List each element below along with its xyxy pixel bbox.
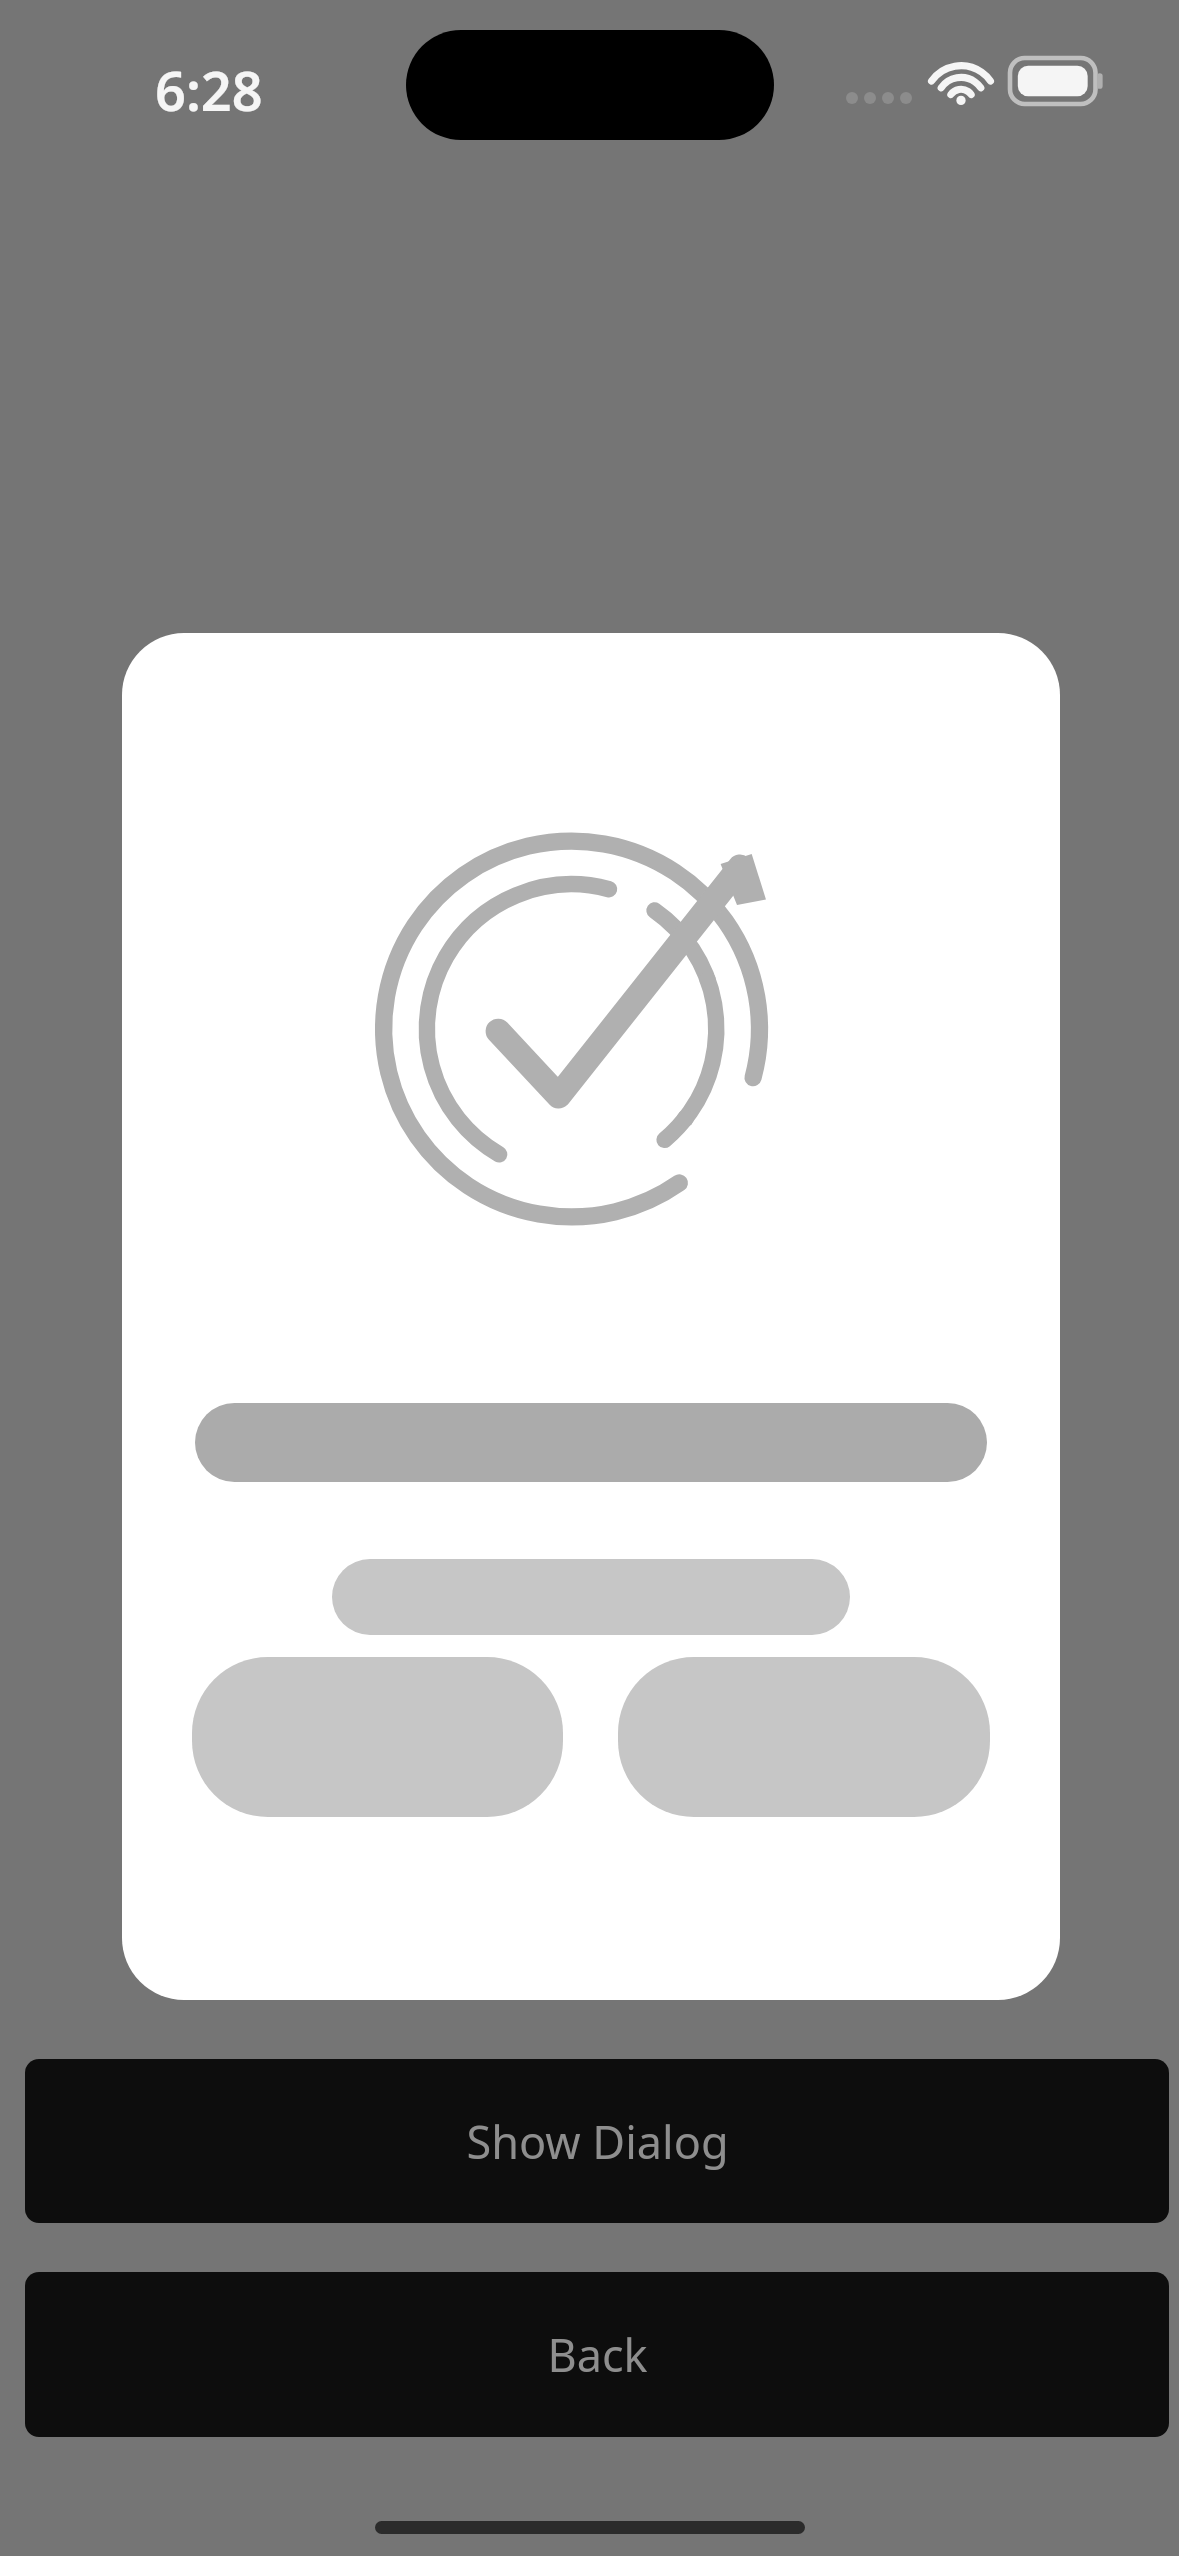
button[interactable]: Back: [25, 2272, 1169, 2437]
button[interactable]: Show Dialog: [25, 2059, 1169, 2223]
button[interactable]: Confirm: [618, 1657, 990, 1817]
button[interactable]: Cancel: [192, 1657, 563, 1817]
staticText: Back: [547, 2324, 648, 2385]
staticText: Show Dialog: [466, 2111, 729, 2172]
staticText: 6:28: [155, 53, 263, 127]
